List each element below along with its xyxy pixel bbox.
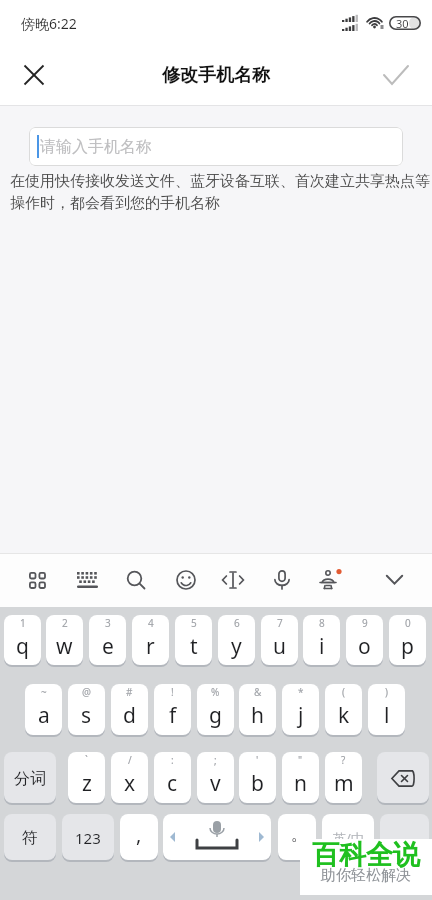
staticText: 0 [405, 616, 411, 630]
button[interactable]: % [197, 684, 234, 737]
staticText: 符 [22, 828, 38, 848]
staticText: e [102, 632, 114, 661]
staticText: s [81, 701, 92, 730]
staticText: t [190, 632, 198, 661]
button[interactable]: @ [68, 684, 105, 737]
staticText: 英/中 [333, 829, 364, 847]
staticText: : [171, 753, 174, 767]
button[interactable] [378, 564, 410, 596]
staticText: @ [82, 685, 91, 699]
staticText: w [56, 632, 73, 661]
button[interactable] [266, 564, 298, 596]
button[interactable] [16, 57, 52, 93]
button[interactable]: ~ [25, 684, 62, 737]
button[interactable]: & [239, 684, 276, 737]
staticText: 百科全说 [312, 838, 420, 872]
button[interactable]: ? [325, 752, 362, 805]
button[interactable]: 分词 [4, 752, 56, 805]
staticText: 修改手机名称 [162, 64, 270, 87]
staticText: % [211, 685, 220, 699]
staticText: h [251, 701, 264, 730]
staticText: ( [342, 685, 345, 699]
button[interactable] [376, 57, 416, 93]
staticText: c [167, 769, 178, 798]
staticText: , [136, 821, 142, 848]
staticText: 3 [105, 616, 111, 630]
button[interactable]: ` [68, 752, 105, 805]
staticText: / [128, 753, 132, 767]
staticText: 4 [148, 616, 154, 630]
button[interactable]: 9 [346, 615, 383, 667]
button[interactable]: 。 [278, 814, 316, 862]
staticText: 请输入手机名称 [40, 137, 152, 157]
button[interactable]: , [120, 814, 158, 862]
staticText: 6 [234, 616, 240, 630]
button[interactable]: " [282, 752, 319, 805]
button[interactable] [217, 564, 249, 596]
button[interactable] [380, 814, 429, 862]
staticText: l [384, 701, 390, 730]
button[interactable]: 2 [46, 615, 83, 667]
staticText: & [254, 685, 262, 699]
button[interactable]: # [111, 684, 148, 737]
button[interactable] [120, 564, 152, 596]
staticText: ; [214, 753, 217, 767]
staticText: ~ [41, 685, 47, 699]
staticText: # [126, 685, 133, 699]
staticText: ! [171, 685, 174, 699]
staticText: ? [341, 753, 346, 767]
button[interactable] [314, 564, 346, 596]
staticText: q [16, 632, 29, 661]
button[interactable]: / [111, 752, 148, 805]
staticText: 2 [62, 616, 68, 630]
staticText: f [169, 701, 177, 730]
staticText: u [273, 632, 286, 661]
button[interactable] [71, 564, 103, 596]
staticText: ) [385, 685, 388, 699]
button[interactable]: 8 [303, 615, 340, 667]
staticText: y [231, 632, 242, 661]
staticText: ' [256, 753, 259, 767]
button[interactable]: 3 [89, 615, 126, 667]
staticText: m [334, 769, 354, 798]
button[interactable]: 符 [4, 814, 56, 862]
staticText: 1 [20, 616, 26, 630]
staticText: 123 [75, 828, 101, 848]
button[interactable]: 1 [4, 615, 41, 667]
button[interactable]: * [282, 684, 319, 737]
button[interactable]: 7 [261, 615, 298, 667]
button[interactable]: 英/中 [322, 814, 374, 862]
staticText: ` [85, 753, 88, 767]
button[interactable] [170, 564, 202, 596]
button[interactable]: ) [368, 684, 405, 737]
button[interactable]: 请输入手机名称 [29, 127, 403, 166]
staticText: p [401, 632, 414, 661]
button[interactable]: 6 [218, 615, 255, 667]
button[interactable]: ' [239, 752, 276, 805]
staticText: 。 [291, 824, 308, 845]
button[interactable]: : [154, 752, 191, 805]
staticText: 8 [319, 616, 325, 630]
staticText: * [298, 685, 304, 699]
button[interactable]: ( [325, 684, 362, 737]
staticText: " [298, 753, 303, 767]
staticText: v [210, 769, 221, 798]
button[interactable]: 4 [132, 615, 169, 667]
button[interactable] [21, 564, 53, 596]
staticText: g [209, 701, 222, 730]
staticText: i [319, 632, 325, 661]
button[interactable]: 5 [175, 615, 212, 667]
button[interactable]: 123 [62, 814, 114, 862]
staticText: 分词 [14, 769, 46, 789]
staticText: j [298, 701, 304, 730]
staticText: r [146, 632, 155, 661]
staticText: a [38, 701, 50, 730]
button[interactable]: 0 [389, 615, 426, 667]
button[interactable]: ! [154, 684, 191, 737]
staticText: 助你轻松解决 [321, 866, 411, 885]
button[interactable]: ; [197, 752, 234, 805]
staticText: o [358, 632, 371, 661]
button[interactable] [377, 752, 429, 805]
staticText: 在使用快传接收发送文件、蓝牙设备互联、首次建立共享热点等 操作时，都会看到您的手… [10, 172, 430, 213]
button[interactable] [163, 814, 271, 862]
